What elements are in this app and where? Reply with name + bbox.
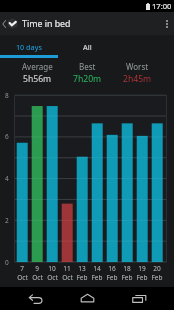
staticText: Time in bed [22,18,71,30]
staticText: Worst [126,61,149,72]
staticText: 13 [78,264,86,273]
staticText: 7 [20,264,24,273]
staticText: Oct [47,273,58,282]
staticText: 0 [5,258,9,267]
staticText: 20 [153,264,161,273]
staticText: Oct [62,273,73,282]
staticText: Feb [121,273,133,282]
staticText: 10 days [16,42,42,52]
staticText: 7h20m [73,73,102,85]
button[interactable]: Back [18,287,52,310]
staticText: 16 [108,264,116,273]
button[interactable]: Recent apps [122,287,156,310]
staticText: Oct [17,273,28,282]
staticText: Best [79,61,96,72]
button[interactable]: Navigate up [2,12,18,35]
button[interactable]: All [58,35,116,58]
staticText: Feb [91,273,103,282]
button[interactable]: More options [160,12,174,35]
staticText: Feb [106,273,118,282]
staticText: 8 [5,91,9,100]
staticText: Feb [136,273,148,282]
button[interactable]: 10 days [0,35,58,58]
staticText: Feb [151,273,163,282]
staticText: 5h56m [23,73,52,85]
staticText: 9 [35,264,39,273]
staticText: 17:00 [152,1,172,11]
staticText: 19 [138,264,146,273]
staticText: 18 [123,264,131,273]
staticText: Average [22,61,53,72]
staticText: 14 [93,264,101,273]
staticText: 10 [48,264,56,273]
staticText: 2h45m [123,73,152,85]
staticText: All [83,42,92,52]
staticText: 11 [63,264,71,273]
staticText: 6 [5,132,9,141]
staticText: Oct [32,273,43,282]
staticText: Feb [76,273,88,282]
staticText: 4 [5,174,9,183]
button[interactable]: Home [70,287,104,310]
staticText: 2 [5,216,9,225]
